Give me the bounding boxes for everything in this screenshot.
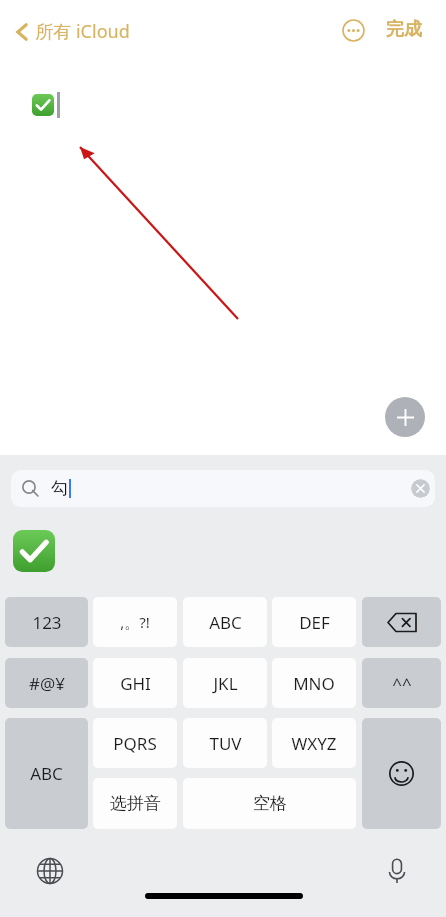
button[interactable]: ABC — [183, 597, 267, 647]
button[interactable]: PQRS — [93, 718, 177, 768]
staticText: 勾 — [51, 478, 68, 499]
staticText: ^^ — [392, 672, 412, 695]
button[interactable]: JKL — [183, 658, 267, 708]
button[interactable]: 完成 — [380, 15, 428, 44]
staticText: 所有 iCloud — [35, 19, 130, 44]
staticText: DEF — [299, 611, 330, 634]
staticText: 选拼音 — [110, 793, 161, 814]
button[interactable]: Dictation — [373, 847, 421, 895]
staticText: ,。?! — [120, 612, 150, 632]
staticText: 空格 — [253, 793, 287, 814]
staticText: WXYZ — [291, 732, 337, 755]
staticText: ABC — [30, 762, 63, 785]
staticText: TUV — [209, 732, 242, 755]
button[interactable]: Check mark emoji candidate — [13, 530, 55, 572]
staticText: JKL — [213, 672, 238, 695]
button[interactable]: ,。?! — [93, 597, 177, 647]
staticText: #@¥ — [29, 672, 65, 695]
staticText: 完成 — [386, 18, 422, 41]
button[interactable]: Emoji keyboard — [362, 718, 441, 829]
button[interactable]: More options — [337, 14, 369, 46]
staticText: GHI — [120, 672, 151, 695]
button[interactable]: Add — [385, 397, 425, 437]
button[interactable]: MNO — [272, 658, 356, 708]
button[interactable]: 选拼音 — [93, 778, 177, 829]
button[interactable]: 勾 — [11, 470, 435, 507]
button[interactable]: GHI — [93, 658, 177, 708]
button[interactable]: #@¥ — [5, 658, 88, 708]
staticText: 123 — [32, 611, 62, 634]
staticText: PQRS — [113, 732, 157, 755]
button[interactable]: DEF — [272, 597, 356, 647]
button[interactable]: Clear text — [411, 479, 430, 498]
button[interactable]: ABC — [5, 718, 88, 829]
staticText: MNO — [293, 672, 335, 695]
button[interactable]: 123 — [5, 597, 88, 647]
button[interactable]: 所有 iCloud — [10, 15, 136, 48]
button[interactable]: ^^ — [362, 658, 441, 708]
button[interactable]: 空格 — [183, 778, 356, 829]
button[interactable]: TUV — [183, 718, 267, 768]
button[interactable]: Switch keyboard — [26, 847, 74, 895]
button[interactable]: Delete — [362, 597, 441, 647]
button[interactable]: WXYZ — [272, 718, 356, 768]
staticText: ABC — [209, 611, 242, 634]
